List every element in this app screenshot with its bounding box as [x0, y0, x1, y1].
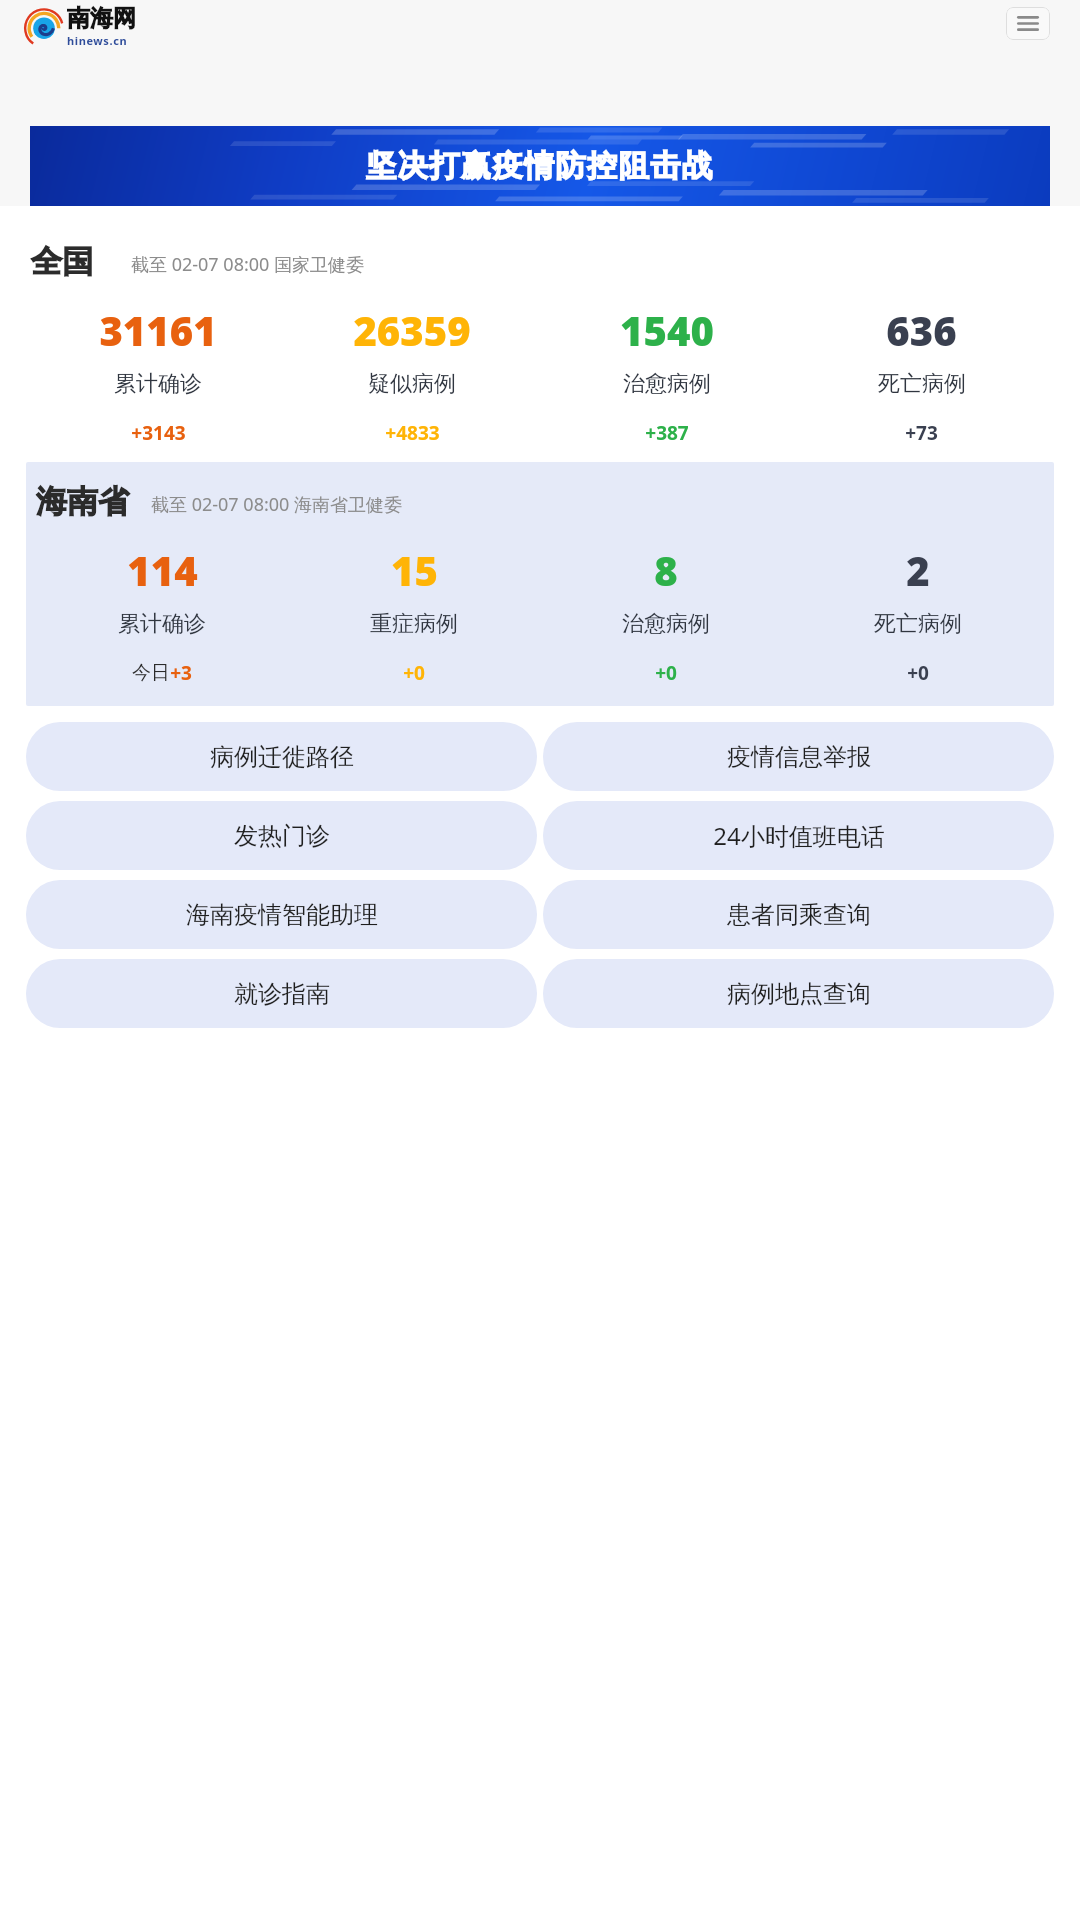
staticText: 31161	[99, 303, 217, 357]
staticText: +387	[645, 420, 689, 446]
button[interactable]: 发热门诊	[26, 801, 537, 870]
staticText: 15	[391, 543, 438, 597]
button[interactable]: 疫情信息举报	[543, 722, 1054, 791]
staticText: 坚决打赢疫情防控阻击战	[366, 147, 714, 185]
staticText: +3	[170, 660, 192, 686]
button[interactable]: 坚决打赢疫情防控阻击战	[30, 126, 1050, 206]
staticText: +0	[907, 660, 929, 686]
staticText: 114	[127, 543, 198, 597]
staticText: 1540	[620, 303, 714, 357]
staticText: +3143	[131, 420, 186, 446]
staticText: 24小时值班电话	[713, 819, 885, 852]
staticText: 南海网	[67, 4, 136, 33]
button[interactable]: 病例地点查询	[543, 959, 1054, 1028]
staticText: 就诊指南	[234, 979, 330, 1009]
button[interactable]: 病例迁徙路径	[26, 722, 537, 791]
staticText: 海南省	[36, 482, 129, 521]
staticText: 死亡病例	[878, 370, 966, 398]
staticText: 2	[906, 543, 930, 597]
staticText: 疫情信息举报	[727, 742, 871, 772]
staticText: 全国	[31, 242, 93, 281]
staticText: hinews.cn	[67, 33, 128, 46]
button[interactable]: Menu	[1006, 7, 1050, 40]
staticText: +0	[655, 660, 677, 686]
staticText: 发热门诊	[234, 821, 330, 851]
staticText: +4833	[385, 420, 440, 446]
staticText: 8	[654, 543, 678, 597]
staticText: 26359	[353, 303, 471, 357]
staticText: 病例迁徙路径	[210, 742, 354, 772]
staticText: 治愈病例	[623, 370, 711, 398]
staticText: 截至 02-07 08:00 海南省卫健委	[151, 492, 403, 517]
staticText: 病例地点查询	[727, 979, 871, 1009]
button[interactable]: 海南疫情智能助理	[26, 880, 537, 949]
staticText: 截至 02-07 08:00 国家卫健委	[131, 252, 365, 277]
staticText: 海南疫情智能助理	[186, 900, 378, 930]
button[interactable]: 24小时值班电话	[543, 801, 1054, 870]
button[interactable]: hinews.cn home	[24, 4, 144, 46]
staticText: 疑似病例	[368, 370, 456, 398]
staticText: 患者同乘查询	[727, 900, 871, 930]
staticText: +73	[905, 420, 938, 446]
staticText: 今日	[132, 661, 170, 685]
staticText: 累计确诊	[118, 610, 206, 638]
staticText: 重症病例	[370, 610, 458, 638]
staticText: +0	[403, 660, 425, 686]
staticText: 累计确诊	[114, 370, 202, 398]
button[interactable]: 患者同乘查询	[543, 880, 1054, 949]
staticText: 636	[886, 303, 957, 357]
button[interactable]: 就诊指南	[26, 959, 537, 1028]
staticText: 治愈病例	[622, 610, 710, 638]
staticText: 死亡病例	[874, 610, 962, 638]
